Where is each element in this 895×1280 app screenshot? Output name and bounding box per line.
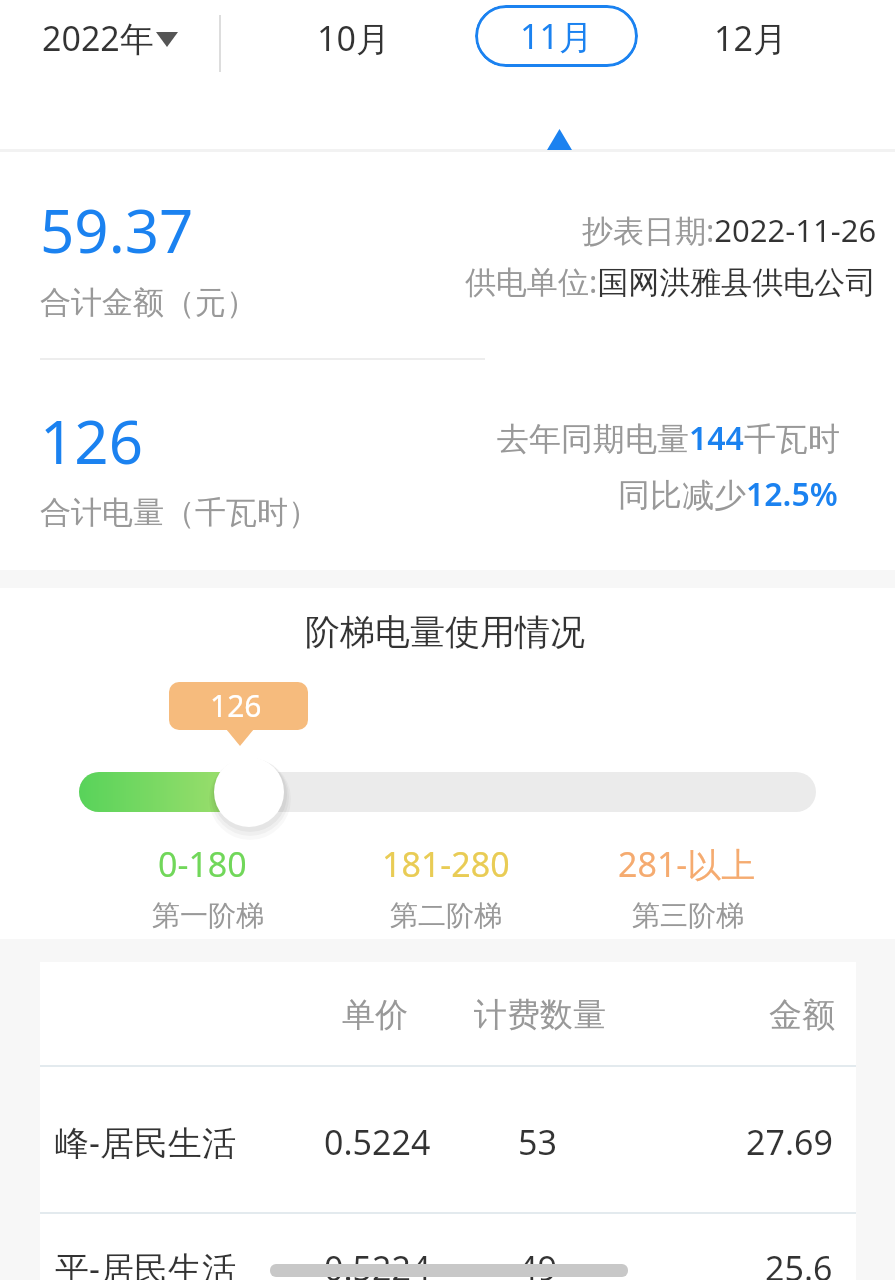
staticText: 53 bbox=[518, 1119, 557, 1165]
staticText: 126 bbox=[40, 400, 143, 482]
staticText: 59.37 bbox=[40, 189, 194, 271]
staticText: 2022年 bbox=[42, 15, 154, 61]
staticText: 181-280 bbox=[382, 841, 510, 887]
staticText: 第二阶梯 bbox=[390, 898, 502, 933]
staticText: 合计金额（元） bbox=[40, 283, 257, 322]
staticText: 49 bbox=[518, 1245, 557, 1280]
staticText: 阶梯电量使用情况 bbox=[305, 610, 585, 654]
staticText: 0.5224 bbox=[324, 1245, 431, 1280]
staticText: 0-180 bbox=[158, 841, 247, 887]
staticText: 126 bbox=[210, 685, 262, 726]
staticText: 0.5224 bbox=[324, 1119, 431, 1165]
staticText: 合计电量（千瓦时） bbox=[40, 493, 319, 532]
staticText: 去年同期电量144千瓦时 bbox=[497, 416, 840, 460]
button[interactable]: 10月 bbox=[0, 4, 801, 72]
staticText: 峰-居民生活 bbox=[55, 1119, 236, 1165]
staticText: 抄表日期:2022-11-26 bbox=[582, 209, 877, 251]
staticText: 同比减少12.5% bbox=[618, 472, 838, 516]
staticText: 27.69 bbox=[746, 1119, 833, 1165]
staticText: 10月 bbox=[317, 15, 390, 61]
staticText: 第一阶梯 bbox=[152, 898, 264, 933]
staticText: 第三阶梯 bbox=[632, 898, 744, 933]
staticText: 25.6 bbox=[765, 1245, 833, 1280]
staticText: 金额 bbox=[769, 994, 835, 1036]
staticText: 计费数量 bbox=[474, 994, 606, 1036]
staticText: 281-以上 bbox=[618, 841, 756, 887]
staticText: 11月 bbox=[520, 13, 593, 59]
button[interactable]: 12月 bbox=[303, 4, 895, 72]
button[interactable]: 2022年 bbox=[42, 4, 895, 72]
button[interactable] bbox=[40, 1067, 856, 1212]
button[interactable] bbox=[214, 757, 284, 827]
staticText: 12月 bbox=[714, 15, 787, 61]
button[interactable]: 11月 bbox=[475, 5, 638, 67]
staticText: 平-居民生活 bbox=[55, 1245, 236, 1280]
staticText: 单价 bbox=[342, 994, 408, 1036]
staticText: 供电单位:国网洪雅县供电公司 bbox=[465, 260, 877, 302]
